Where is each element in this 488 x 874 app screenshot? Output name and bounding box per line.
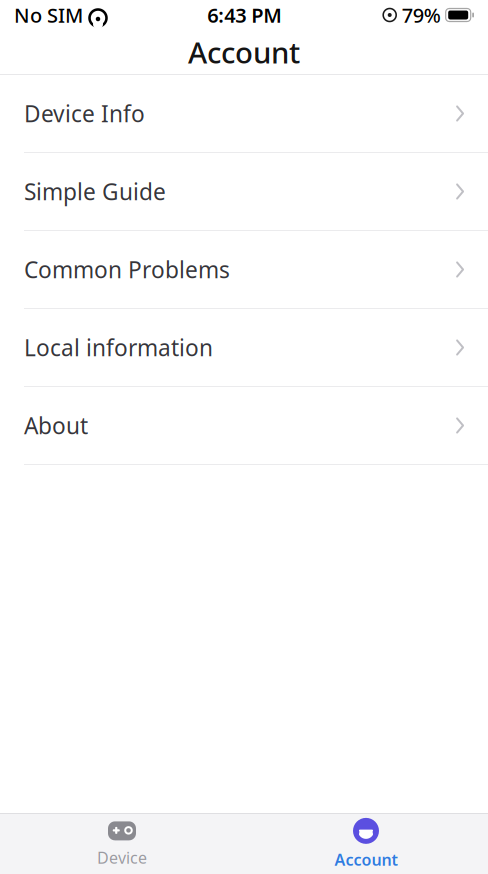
button[interactable]: Device Info: [0, 75, 488, 153]
button[interactable]: Local information: [0, 309, 488, 387]
button[interactable]: Account: [244, 814, 488, 874]
button[interactable]: Device: [0, 814, 244, 874]
button[interactable]: Common Problems: [0, 231, 488, 309]
staticText: No SIM: [14, 2, 83, 28]
staticText: Device Info: [24, 98, 145, 128]
staticText: Simple Guide: [24, 176, 166, 206]
staticText: 6:43 PM: [207, 2, 282, 28]
staticText: 79%: [402, 2, 441, 28]
staticText: Device: [97, 847, 147, 868]
staticText: About: [24, 410, 88, 440]
staticText: Local information: [24, 332, 213, 362]
staticText: Account: [334, 849, 397, 870]
staticText: Common Problems: [24, 254, 230, 284]
staticText: Account: [188, 32, 300, 71]
button[interactable]: About: [0, 387, 488, 465]
button[interactable]: Simple Guide: [0, 153, 488, 231]
